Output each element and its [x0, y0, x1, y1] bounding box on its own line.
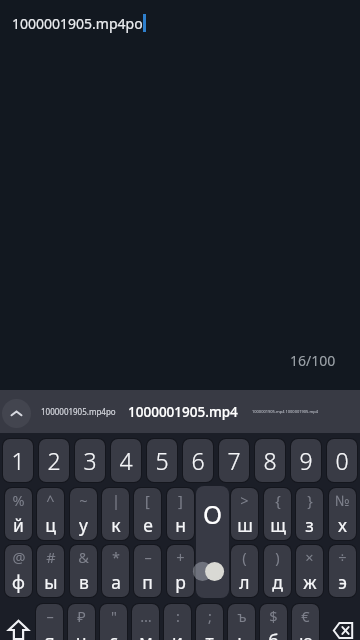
button[interactable]: : — [164, 604, 191, 640]
button[interactable]: № — [329, 488, 356, 540]
staticText: … — [140, 606, 152, 626]
button[interactable]: € — [292, 604, 319, 640]
button[interactable]: 9 — [291, 439, 321, 482]
button[interactable]: " — [100, 604, 127, 640]
staticText: } — [307, 490, 313, 510]
staticText: # — [46, 547, 56, 567]
staticText: 6 — [191, 445, 205, 476]
staticText: : — [176, 606, 180, 626]
button[interactable]: 2 — [39, 439, 69, 482]
staticText: д — [272, 570, 283, 594]
button[interactable]: 4 — [111, 439, 141, 482]
staticText: х — [338, 513, 347, 537]
staticText: ю — [299, 629, 313, 640]
staticText: № — [335, 490, 350, 510]
staticText: € — [301, 606, 310, 626]
staticText: ^ — [46, 490, 55, 510]
staticText: { — [275, 490, 281, 510]
staticText: 1000001905.mp4po — [12, 14, 143, 33]
button[interactable]: ( — [231, 545, 258, 597]
staticText: ь — [237, 629, 247, 640]
staticText: ш — [237, 513, 253, 537]
button[interactable]: > — [231, 488, 258, 540]
staticText: % — [12, 490, 25, 510]
button[interactable]: 1000001905.mp4 — [128, 403, 238, 421]
button[interactable]: 8 — [255, 439, 285, 482]
button[interactable]: 3 — [75, 439, 105, 482]
staticText: э — [338, 570, 347, 594]
staticText: 9 — [299, 445, 313, 476]
staticText: + — [176, 547, 185, 567]
staticText: й — [13, 513, 24, 537]
button[interactable]: 6 — [183, 439, 213, 482]
button[interactable]: 7 — [219, 439, 249, 482]
staticText: ъ — [237, 606, 247, 626]
staticText: [ — [145, 490, 150, 510]
button[interactable]: – — [134, 545, 161, 597]
button[interactable]: ) — [264, 545, 291, 597]
staticText: л — [239, 570, 250, 594]
staticText: п — [142, 570, 153, 594]
button[interactable]: & — [70, 545, 97, 597]
staticText: 3 — [83, 445, 97, 476]
staticText: 16/100 — [290, 351, 336, 370]
staticText: ~ — [79, 490, 88, 510]
staticText: г — [209, 513, 217, 537]
button[interactable]: + — [167, 545, 194, 597]
button[interactable]: } — [296, 488, 323, 540]
button[interactable]: < — [199, 488, 226, 540]
staticText: я — [44, 629, 55, 640]
staticText: О — [203, 497, 223, 531]
button[interactable]: 0 — [327, 439, 357, 482]
staticText: ц — [45, 513, 56, 537]
button[interactable]: ] — [167, 488, 194, 540]
button[interactable]: ₽ — [68, 604, 95, 640]
staticText: $ — [269, 606, 278, 626]
button[interactable]: ~ — [70, 488, 97, 540]
button[interactable]: * — [102, 545, 129, 597]
staticText: в — [79, 570, 89, 594]
button[interactable]: 5 — [147, 439, 177, 482]
staticText: ÷ — [338, 547, 347, 567]
button[interactable]: ъ — [228, 604, 255, 640]
button[interactable]: ^ — [37, 488, 64, 540]
button[interactable]: … — [132, 604, 159, 640]
staticText: @ — [12, 547, 26, 567]
button[interactable]: { — [264, 488, 291, 540]
button[interactable]: = — [199, 545, 226, 597]
button[interactable]: Expand suggestions — [2, 399, 31, 428]
button[interactable]: × — [296, 545, 323, 597]
staticText: к — [111, 513, 121, 537]
staticText: – — [144, 547, 152, 567]
button[interactable]: [ — [134, 488, 161, 540]
staticText: 0 — [335, 445, 349, 476]
button[interactable]: # — [37, 545, 64, 597]
staticText: з — [305, 513, 314, 537]
staticText: 1000001905.mp4 — [128, 403, 238, 421]
staticText: ₽ — [77, 606, 86, 626]
staticText: & — [78, 547, 89, 567]
staticText: р — [175, 570, 186, 594]
button[interactable]: ; — [196, 604, 223, 640]
staticText: 5 — [155, 445, 169, 476]
staticText: ; — [208, 606, 212, 626]
staticText: × — [305, 547, 314, 567]
button[interactable]: – — [36, 604, 63, 640]
staticText: 1000001905.mp4 1000001905.mp4 — [252, 409, 318, 414]
staticText: = — [208, 547, 217, 567]
button[interactable]: % — [5, 488, 32, 540]
button[interactable]: @ — [5, 545, 32, 597]
staticText: ] — [178, 490, 183, 510]
button[interactable]: ÷ — [329, 545, 356, 597]
staticText: – — [46, 606, 54, 626]
button[interactable]: $ — [260, 604, 287, 640]
button[interactable]: Backspace — [326, 604, 359, 640]
button[interactable]: | — [102, 488, 129, 540]
button[interactable]: 1 — [3, 439, 33, 482]
staticText: щ — [270, 513, 286, 537]
staticText: о — [207, 570, 218, 594]
button[interactable]: 1000001905.mp4po — [41, 406, 116, 417]
button[interactable]: 1000001905.mp4 1000001905.mp4 — [252, 409, 318, 414]
staticText: и — [172, 629, 183, 640]
button[interactable]: Shift — [2, 604, 35, 640]
